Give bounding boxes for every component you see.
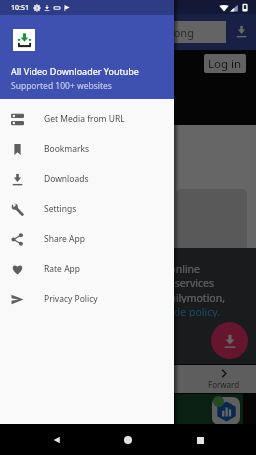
staticText: Supported 100+ websites	[11, 80, 112, 92]
button[interactable]: Download	[211, 322, 248, 359]
button[interactable]: Forward	[0, 365, 256, 393]
button[interactable]: Back	[42, 425, 72, 455]
button[interactable]: Share App	[0, 224, 174, 254]
button[interactable]: Recent apps	[185, 425, 215, 455]
staticText: All Video Downloader Youtube	[11, 65, 139, 77]
staticText: Log in	[208, 56, 242, 72]
staticText: https://www.youtube.com/song	[30, 25, 194, 40]
button[interactable]: Download	[232, 22, 250, 40]
staticText: Settings	[44, 203, 77, 215]
button[interactable]: Downloads	[0, 164, 174, 194]
button[interactable]: Settings	[0, 194, 174, 224]
button[interactable]: Bookmarks	[0, 134, 174, 164]
button[interactable]: Home	[113, 425, 143, 455]
button[interactable]: Log in	[204, 54, 246, 73]
button[interactable]: Rate App	[0, 254, 174, 284]
staticText: Forward	[208, 379, 240, 390]
staticText: 10:51	[11, 3, 29, 13]
staticText: from 100+ sites services	[96, 276, 214, 288]
staticText: Privacy Policy	[44, 293, 98, 305]
staticText: Facebook, dailymotion,	[110, 291, 225, 303]
staticText: see our cookie policy.	[114, 305, 220, 317]
staticText: Get Media from URL	[44, 113, 125, 125]
button[interactable]: Get Media from URL	[0, 104, 174, 134]
staticText: Downloads	[44, 173, 89, 185]
staticText: download videos online	[83, 262, 200, 274]
staticText: Share App	[44, 233, 85, 245]
staticText: Bookmarks	[44, 143, 90, 155]
staticText: Rate App	[44, 263, 81, 275]
button[interactable]: Privacy Policy	[0, 284, 174, 314]
